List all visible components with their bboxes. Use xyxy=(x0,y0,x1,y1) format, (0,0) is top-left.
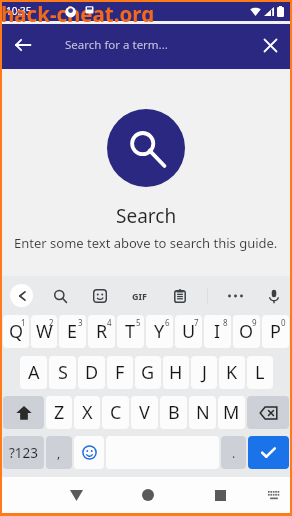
staticText: 6 xyxy=(165,317,170,328)
staticText: V xyxy=(139,400,150,425)
staticText: P xyxy=(270,319,281,344)
staticText: 0 xyxy=(281,317,286,328)
staticText: hack-cheat.org xyxy=(1,0,155,22)
staticText: G xyxy=(141,360,155,385)
button[interactable]: ?123 xyxy=(3,436,44,469)
button[interactable]: N xyxy=(189,396,216,429)
button[interactable]: Back xyxy=(61,480,91,510)
staticText: Z xyxy=(54,400,65,425)
button[interactable]: O xyxy=(233,315,260,348)
button[interactable]: T xyxy=(117,315,144,348)
staticText: W xyxy=(36,319,53,344)
staticText: H xyxy=(169,360,183,385)
button[interactable]: I xyxy=(204,315,231,348)
staticText: M xyxy=(223,400,240,425)
button[interactable]: K xyxy=(219,356,245,389)
staticText: E xyxy=(67,319,78,344)
staticText: O xyxy=(239,319,254,344)
staticText: 2 xyxy=(49,317,54,328)
button[interactable]: A xyxy=(20,356,47,389)
button[interactable]: Search xyxy=(47,283,73,309)
button[interactable]: Clear search xyxy=(253,28,287,62)
staticText: 5 xyxy=(136,317,141,328)
staticText: R xyxy=(96,319,108,344)
staticText: 4 xyxy=(107,317,112,328)
button[interactable]: B xyxy=(160,396,187,429)
staticText: GIF xyxy=(132,290,147,302)
staticText: ?123 xyxy=(9,444,39,462)
staticText: 8 xyxy=(223,317,228,328)
button[interactable]: Backspace xyxy=(247,396,289,429)
button[interactable]: C xyxy=(102,396,129,429)
staticText: S xyxy=(58,360,68,385)
staticText: 7 xyxy=(194,317,199,328)
button[interactable]: Y xyxy=(146,315,173,348)
button[interactable]: X xyxy=(74,396,100,429)
button[interactable]: S xyxy=(49,356,76,389)
staticText: F xyxy=(115,360,125,385)
button[interactable]: More options xyxy=(222,283,248,309)
button[interactable]: E xyxy=(59,315,86,348)
button[interactable]: U xyxy=(175,315,202,348)
staticText: N xyxy=(196,400,210,425)
button[interactable]: Home xyxy=(133,480,163,510)
button[interactable]: Q xyxy=(3,315,29,348)
button[interactable]: , xyxy=(46,436,72,469)
button[interactable]: . xyxy=(221,436,246,469)
button[interactable]: GIF xyxy=(126,283,152,309)
staticText: 1 xyxy=(21,317,26,328)
button[interactable]: Shift xyxy=(3,396,44,429)
staticText: B xyxy=(168,400,180,425)
staticText: Search xyxy=(116,203,177,229)
button[interactable]: V xyxy=(131,396,158,429)
button[interactable]: Emoji xyxy=(74,436,104,469)
staticText: Enter some text above to search this gui… xyxy=(14,234,278,252)
staticText: T xyxy=(125,319,136,344)
button[interactable]: L xyxy=(247,356,273,389)
staticText: Q xyxy=(9,319,24,344)
button[interactable]: J xyxy=(191,356,217,389)
staticText: , xyxy=(57,445,61,461)
button[interactable]: Stickers xyxy=(87,283,113,309)
button[interactable]: W xyxy=(31,315,57,348)
staticText: U xyxy=(182,319,196,344)
staticText: Y xyxy=(154,319,165,344)
staticText: K xyxy=(226,360,238,385)
staticText: C xyxy=(110,400,122,425)
staticText: Search for a term... xyxy=(65,37,168,53)
staticText: 10:35 xyxy=(6,4,32,18)
staticText: 3 xyxy=(78,317,83,328)
staticText: 9 xyxy=(252,317,257,328)
button[interactable]: F xyxy=(107,356,133,389)
staticText: I xyxy=(214,319,221,344)
button[interactable]: Z xyxy=(46,396,72,429)
button[interactable]: Clipboard xyxy=(167,283,193,309)
staticText: A xyxy=(28,360,40,385)
staticText: . xyxy=(232,445,236,461)
button[interactable]: D xyxy=(78,356,105,389)
button[interactable]: Search xyxy=(248,436,289,469)
button[interactable]: R xyxy=(88,315,115,348)
button[interactable]: M xyxy=(218,396,245,429)
button[interactable]: G xyxy=(135,356,161,389)
button[interactable]: Voice input xyxy=(261,283,287,309)
button[interactable]: Expand toolbar xyxy=(10,284,33,307)
button[interactable]: Back xyxy=(6,28,40,62)
button[interactable]: H xyxy=(163,356,189,389)
button[interactable]: P xyxy=(262,315,289,348)
staticText: J xyxy=(202,360,207,385)
button[interactable]: Switch keyboard xyxy=(259,480,289,510)
button[interactable]: Recent apps xyxy=(205,480,235,510)
staticText: X xyxy=(82,400,93,425)
staticText: L xyxy=(255,360,265,385)
staticText: D xyxy=(85,360,99,385)
